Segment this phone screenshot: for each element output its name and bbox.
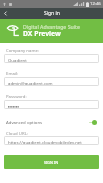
button[interactable]: Back [0, 8, 11, 19]
staticText: 12:46 [90, 1, 101, 7]
button[interactable] [4, 100, 99, 109]
staticText: Company name: [6, 47, 40, 53]
staticText: admin@quadient.com [8, 80, 53, 86]
staticText: SIGN IN [44, 160, 59, 165]
button[interactable]: admin@quadient.com [4, 77, 99, 86]
staticText: DX Preview [23, 29, 61, 38]
button[interactable]: Advanced options [6, 118, 97, 126]
button[interactable]: https://quadient.cloudmobiledev.net [4, 136, 99, 145]
staticText: Password: [6, 93, 27, 99]
staticText: Digital Advantage Suite [23, 23, 80, 30]
staticText: Advanced options [6, 119, 43, 125]
staticText: Email: [6, 70, 19, 76]
staticText: Quadient [8, 57, 27, 63]
button[interactable]: Quadient [4, 54, 99, 63]
staticText: https://quadient.cloudmobiledev.net [8, 139, 82, 145]
staticText: Sign in [44, 10, 60, 17]
button[interactable]: SIGN IN [4, 155, 99, 169]
staticText: Cloud URL: [6, 130, 29, 136]
